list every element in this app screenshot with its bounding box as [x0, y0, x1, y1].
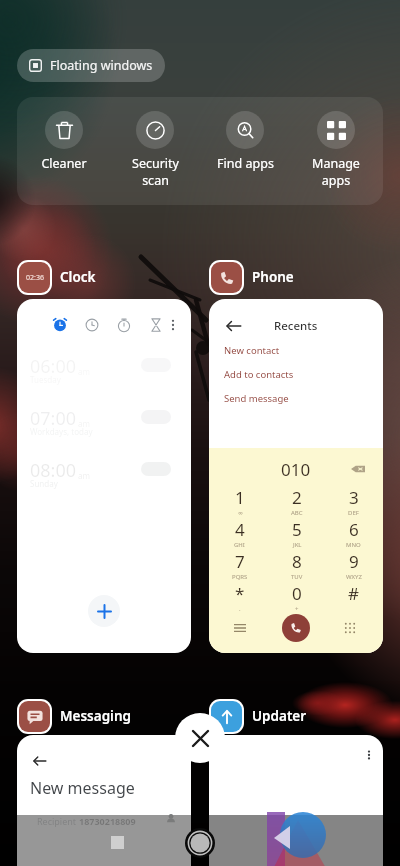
- button[interactable]: Call log: [234, 622, 246, 634]
- button[interactable]: 1: [211, 486, 268, 518]
- button[interactable]: Recents: [209, 299, 383, 653]
- button[interactable]: 3: [325, 486, 382, 518]
- staticText: 2: [292, 486, 302, 509]
- staticText: 4: [235, 518, 245, 541]
- staticText: 010: [281, 458, 311, 481]
- button[interactable]: Clear all: [175, 713, 225, 763]
- staticText: 3: [349, 486, 359, 509]
- staticText: Add to contacts: [224, 368, 294, 381]
- staticText: +: [295, 605, 299, 613]
- button[interactable]: 4: [211, 518, 268, 550]
- button[interactable]: Add alarm: [88, 595, 120, 627]
- button[interactable]: Call: [282, 614, 310, 642]
- button[interactable]: *: [211, 582, 268, 614]
- staticText: JKL: [293, 541, 302, 549]
- button[interactable]: Manage apps: [291, 97, 381, 188]
- staticText: Updater: [252, 707, 307, 725]
- button[interactable]: Phone: [209, 259, 294, 295]
- button[interactable]: 0: [268, 582, 325, 614]
- staticText: Workdays, today: [30, 426, 93, 437]
- button[interactable]: 06:00: [17, 299, 191, 653]
- button[interactable]: Updater: [209, 698, 307, 734]
- staticText: am: [78, 470, 90, 481]
- staticText: *: [235, 582, 245, 605]
- staticText: ABC: [291, 509, 303, 517]
- staticText: 7: [235, 550, 245, 573]
- button[interactable]: Cleaner: [19, 97, 109, 172]
- staticText: 08:00: [30, 458, 77, 483]
- staticText: PQRS: [232, 573, 248, 581]
- button[interactable]: 5: [268, 518, 325, 550]
- staticText: Cleaner: [41, 155, 87, 172]
- button[interactable]: Find apps: [200, 97, 290, 172]
- staticText: New message: [30, 777, 135, 799]
- button[interactable]: 7: [211, 550, 268, 582]
- button[interactable]: #: [325, 582, 382, 614]
- staticText: Send message: [224, 392, 289, 405]
- button[interactable]: Floating windows: [17, 49, 165, 82]
- staticText: 07:00: [30, 406, 77, 431]
- staticText: DEF: [348, 509, 359, 517]
- button[interactable]: More options: [361, 747, 377, 763]
- button[interactable]: Messaging: [17, 698, 131, 734]
- staticText: 8: [292, 550, 302, 573]
- button[interactable]: Home: [185, 828, 215, 858]
- button[interactable]: 2: [268, 486, 325, 518]
- button[interactable]: 02:36: [17, 259, 96, 295]
- button[interactable]: 9: [325, 550, 382, 582]
- staticText: MNO: [346, 541, 361, 549]
- staticText: 6: [349, 518, 359, 541]
- button[interactable]: 8: [268, 550, 325, 582]
- button[interactable]: Backspace: [351, 462, 365, 476]
- staticText: 5: [292, 518, 302, 541]
- staticText: Recipient: [37, 815, 77, 827]
- staticText: am: [78, 418, 90, 429]
- button[interactable]: Security scan: [110, 97, 200, 188]
- staticText: New contact: [224, 344, 280, 357]
- button[interactable]: Back: [33, 754, 47, 768]
- staticText: 1: [235, 486, 245, 509]
- staticText: .: [239, 605, 241, 613]
- staticText: WXYZ: [346, 573, 362, 581]
- staticText: Floating windows: [50, 57, 153, 74]
- button[interactable]: Back: [17, 735, 191, 866]
- staticText: 02:36: [26, 273, 44, 283]
- staticText: 9: [349, 550, 359, 573]
- staticText: Messaging: [60, 707, 131, 725]
- staticText: ∞: [238, 509, 243, 516]
- staticText: Manage apps: [312, 155, 360, 188]
- staticText: 0: [292, 582, 302, 605]
- staticText: Clock: [60, 268, 96, 286]
- staticText: TUV: [291, 573, 303, 581]
- staticText: Sunday: [30, 478, 58, 489]
- button[interactable]: 6: [325, 518, 382, 550]
- staticText: GHI: [234, 541, 245, 549]
- staticText: #: [348, 582, 359, 605]
- staticText: Phone: [252, 268, 294, 286]
- staticText: Recents: [274, 318, 318, 334]
- staticText: 06:00: [30, 354, 77, 379]
- staticText: Find apps: [217, 155, 274, 172]
- staticText: 18730218809: [79, 815, 136, 827]
- staticText: Security scan: [132, 155, 179, 188]
- button[interactable]: Keypad: [344, 622, 356, 634]
- button[interactable]: More options: [209, 735, 383, 866]
